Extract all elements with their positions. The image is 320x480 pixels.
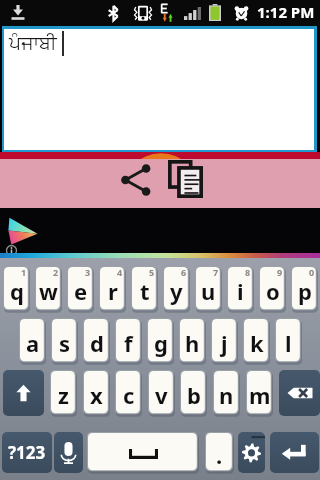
staticText: .	[216, 440, 223, 470]
button[interactable]: j	[211, 318, 238, 364]
button[interactable]: ਪੰਜਾਬੀ	[4, 29, 314, 150]
staticText: f	[124, 328, 133, 358]
staticText: 9	[277, 266, 283, 278]
staticText: r	[108, 276, 118, 306]
button[interactable]: 5	[131, 266, 158, 312]
button[interactable]: m	[246, 370, 273, 416]
staticText: 2	[53, 266, 59, 278]
button[interactable]: a	[19, 318, 46, 364]
staticText: e	[74, 276, 88, 306]
staticText: 7	[213, 266, 219, 278]
button[interactable]: Voice input	[54, 432, 83, 473]
staticText: 6	[181, 266, 187, 278]
staticText: 1:12 PM	[257, 2, 315, 22]
staticText: c	[123, 380, 135, 410]
button[interactable]: Copy	[162, 156, 208, 202]
staticText: t	[140, 276, 150, 306]
staticText: h	[185, 328, 200, 358]
staticText: l	[285, 328, 292, 358]
button[interactable]: l	[275, 318, 302, 364]
staticText: i	[237, 276, 244, 306]
button[interactable]: d	[83, 318, 110, 364]
staticText: x	[90, 380, 103, 410]
staticText: ਪੰਜਾਬੀ	[9, 34, 57, 53]
staticText: j	[221, 328, 228, 358]
button[interactable]: 6	[163, 266, 190, 312]
button[interactable]: g	[147, 318, 174, 364]
button[interactable]	[0, 208, 320, 258]
staticText: q	[10, 276, 24, 306]
button[interactable]: 9	[259, 266, 286, 312]
button[interactable]: 7	[195, 266, 222, 312]
staticText: a	[26, 328, 40, 358]
staticText: g	[154, 328, 168, 358]
button[interactable]: .	[205, 432, 234, 473]
button[interactable]: n	[213, 370, 240, 416]
button[interactable]: c	[115, 370, 142, 416]
button[interactable]: 8	[227, 266, 254, 312]
button[interactable]: b	[180, 370, 207, 416]
staticText: v	[155, 380, 168, 410]
staticText: o	[266, 276, 280, 306]
button[interactable]: 2	[35, 266, 62, 312]
button[interactable]: Settings	[238, 432, 265, 473]
button[interactable]: z	[50, 370, 77, 416]
staticText: 8	[245, 266, 251, 278]
staticText: 4	[117, 266, 123, 278]
staticText: n	[219, 380, 234, 410]
staticText: 5	[149, 266, 155, 278]
button[interactable]: ?123	[2, 432, 52, 473]
staticText: w	[39, 276, 58, 306]
staticText: k	[250, 328, 264, 358]
button[interactable]: f	[115, 318, 142, 364]
button[interactable]: Space	[87, 432, 199, 473]
button[interactable]: Enter	[270, 432, 319, 473]
button[interactable]: 0	[291, 266, 318, 312]
button[interactable]: h	[179, 318, 206, 364]
staticText: 0	[309, 266, 315, 278]
staticText: ?123	[8, 441, 46, 464]
staticText: s	[59, 328, 71, 358]
staticText: m	[249, 380, 271, 410]
button[interactable]: 3	[67, 266, 94, 312]
button[interactable]: k	[243, 318, 270, 364]
button[interactable]: Shift	[3, 370, 44, 416]
button[interactable]: Share	[113, 157, 159, 203]
button[interactable]: v	[148, 370, 175, 416]
button[interactable]: 1	[3, 266, 30, 312]
staticText: u	[201, 276, 216, 306]
button[interactable]: Backspace	[279, 370, 320, 416]
staticText: z	[58, 380, 69, 410]
staticText: p	[298, 276, 312, 306]
button[interactable]: x	[83, 370, 110, 416]
staticText: 1	[21, 266, 27, 278]
staticText: d	[90, 328, 104, 358]
button[interactable]: s	[51, 318, 78, 364]
staticText: 3	[85, 266, 91, 278]
button[interactable]: 4	[99, 266, 126, 312]
staticText: b	[187, 380, 201, 410]
staticText: y	[170, 276, 183, 306]
